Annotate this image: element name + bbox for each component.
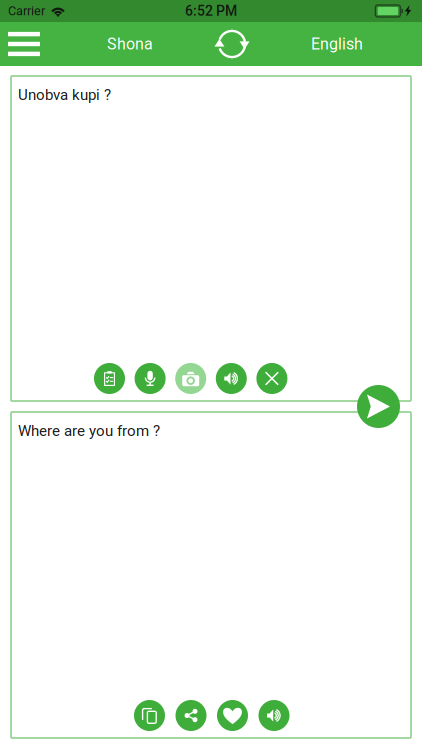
button[interactable]: Favourite [217, 700, 248, 731]
staticText: Shona [107, 35, 153, 53]
button[interactable]: Camera [175, 363, 206, 394]
staticText: Where are you from ? [18, 422, 160, 440]
button[interactable]: Swap languages [210, 22, 254, 66]
button[interactable]: Speak translation [258, 700, 289, 731]
button[interactable]: Menu [0, 22, 48, 66]
button[interactable]: Translate [357, 385, 400, 428]
button[interactable]: Copy [134, 700, 165, 731]
button[interactable]: Speak [216, 363, 247, 394]
staticText: English [311, 35, 363, 53]
button[interactable]: Clear [256, 363, 287, 394]
button[interactable]: Voice input [135, 363, 166, 394]
staticText: Carrier [8, 4, 45, 18]
staticText: 6:52 PM [185, 3, 237, 19]
button[interactable]: Paste [94, 363, 125, 394]
button[interactable]: English [282, 22, 392, 66]
button[interactable]: Share [175, 700, 206, 731]
button[interactable]: Shona [75, 22, 185, 66]
staticText: Unobva kupi ? [18, 86, 111, 104]
